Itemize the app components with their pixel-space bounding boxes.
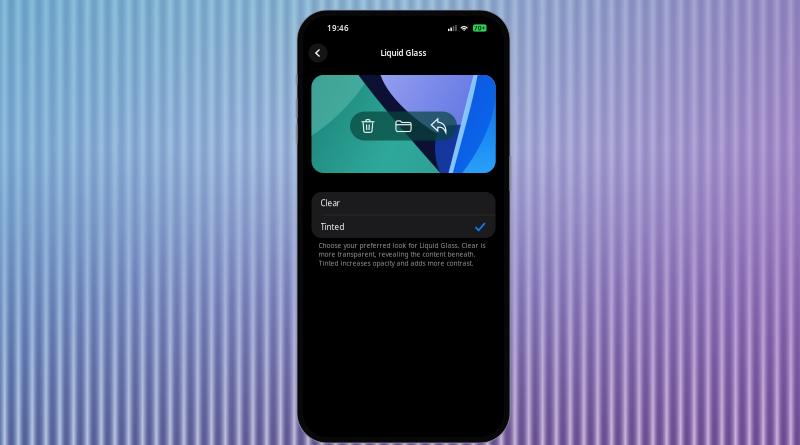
button[interactable]: Reply — [421, 111, 457, 140]
staticText: Tinted — [320, 221, 344, 232]
staticText: Choose your preferred look for Liquid Gl… — [318, 241, 485, 268]
button[interactable]: Delete — [350, 111, 386, 140]
staticText: 19:46 — [327, 23, 349, 33]
button[interactable]: Move to folder — [386, 111, 421, 140]
button[interactable]: Tinted — [311, 215, 495, 238]
staticText: Clear — [320, 198, 339, 208]
staticText: Liquid Glass — [380, 48, 426, 58]
button[interactable]: Clear — [311, 192, 495, 215]
staticText: 70+ — [474, 24, 486, 32]
button[interactable]: Back — [305, 41, 331, 65]
